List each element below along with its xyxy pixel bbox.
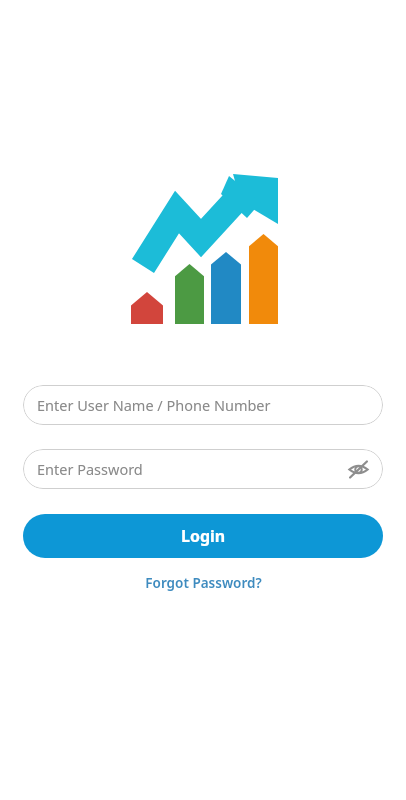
button[interactable]: Show password — [341, 452, 375, 486]
button[interactable]: Forgot Password? — [137, 571, 270, 595]
button[interactable]: Enter User Name / Phone Number — [23, 385, 383, 425]
staticText: Enter Password — [37, 459, 143, 479]
staticText: Login — [181, 525, 226, 547]
button[interactable]: Enter Password — [23, 449, 383, 489]
staticText: Forgot Password? — [145, 574, 262, 592]
staticText: Enter User Name / Phone Number — [37, 395, 271, 415]
button[interactable]: Login — [23, 514, 383, 558]
